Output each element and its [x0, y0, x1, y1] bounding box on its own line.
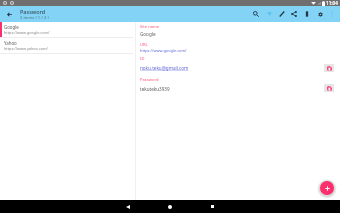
staticText: 11:04: [326, 0, 338, 6]
button[interactable]: Back: [3, 6, 15, 22]
staticText: ID: [140, 56, 145, 62]
button[interactable]: Yahoo: [0, 38, 133, 53]
button[interactable]: Delete: [301, 6, 313, 22]
staticText: Google: [140, 31, 156, 37]
button[interactable]: Add: [320, 181, 334, 195]
staticText: Password: [20, 8, 46, 15]
staticText: noku.teku@gmail.com: [140, 65, 189, 71]
staticText: Google: [4, 24, 19, 30]
button[interactable]: Filter: [263, 6, 275, 22]
button[interactable]: Google: [0, 22, 133, 37]
button[interactable]: More options: [326, 6, 338, 22]
button[interactable]: Search: [250, 6, 262, 22]
staticText: Site name: [140, 24, 160, 30]
button[interactable]: Home: [160, 200, 180, 213]
staticText: URL: [140, 42, 148, 48]
button[interactable]: Recents: [202, 200, 222, 213]
staticText: 2 items ( 1 / 2 ): [20, 15, 49, 21]
staticText: Yahoo: [4, 40, 17, 46]
button[interactable]: Copy: [324, 64, 334, 72]
staticText: Password: [140, 77, 159, 83]
button[interactable]: Share: [288, 6, 300, 22]
button[interactable]: Back: [118, 200, 138, 213]
staticText: https://www.google.com/: [140, 48, 187, 53]
staticText: tekuteku3939: [140, 86, 170, 92]
staticText: https://www.google.com/: [4, 30, 50, 35]
button[interactable]: Copy: [324, 84, 334, 92]
button[interactable]: Settings: [314, 6, 326, 22]
button[interactable]: Edit: [276, 6, 288, 22]
staticText: https://www.yahoo.com/: [4, 46, 49, 51]
